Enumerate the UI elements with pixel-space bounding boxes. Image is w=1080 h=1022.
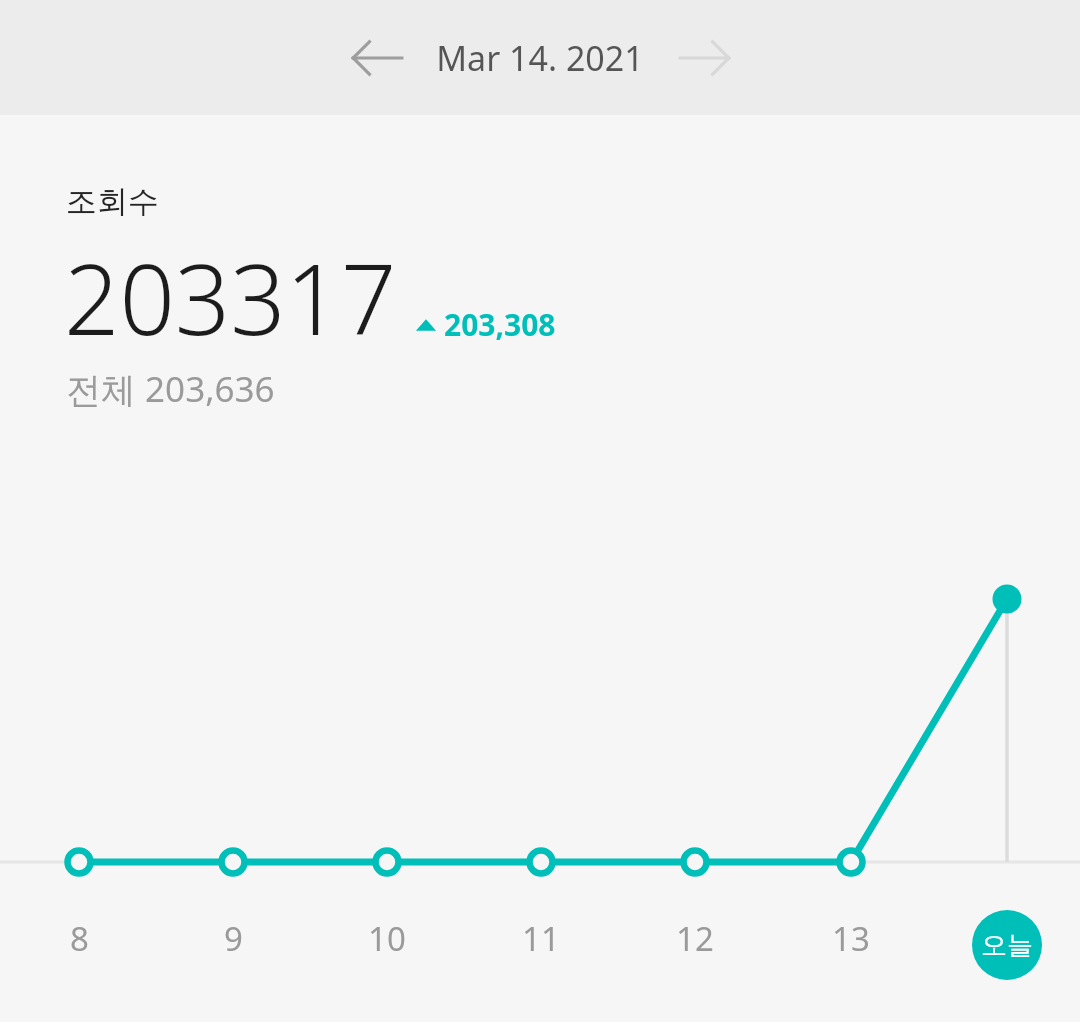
staticText: 11	[522, 916, 560, 961]
staticText: 9	[224, 916, 243, 961]
button[interactable]: Mar 14. 2021	[428, 29, 652, 87]
staticText: 10	[368, 916, 406, 961]
staticText: 조회수	[66, 182, 159, 221]
staticText: 8	[70, 916, 89, 961]
staticText: 203,308	[444, 304, 556, 345]
staticText: 12	[676, 916, 714, 961]
staticText: Mar 14. 2021	[436, 35, 644, 81]
staticText: 전체 203,636	[66, 365, 275, 413]
button[interactable]: Previous day	[334, 15, 420, 101]
button[interactable]: Next day	[662, 15, 748, 101]
staticText: 오늘	[981, 929, 1033, 962]
staticText: 13	[832, 916, 870, 961]
staticText: 203317	[64, 231, 397, 363]
button[interactable]: 오늘	[972, 910, 1042, 980]
